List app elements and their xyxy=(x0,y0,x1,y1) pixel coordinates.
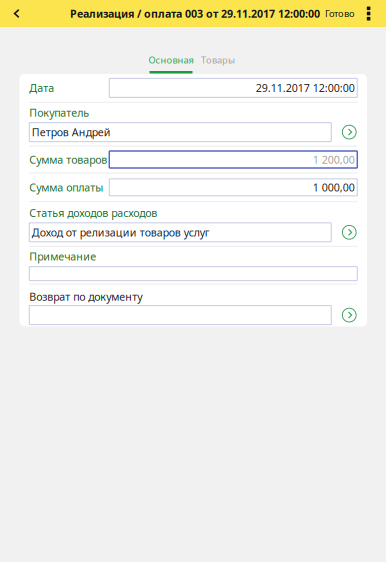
staticText: 1 200,00 xyxy=(313,152,355,167)
button[interactable]: Основная xyxy=(145,27,197,74)
staticText: Примечание xyxy=(29,249,96,263)
button[interactable]: More options xyxy=(359,0,379,27)
button[interactable]: Готово xyxy=(321,0,359,27)
button[interactable]: Back xyxy=(3,0,31,27)
button[interactable]: Select Покупатель xyxy=(341,124,357,140)
staticText: Возврат по документу xyxy=(29,289,142,304)
staticText: Готово xyxy=(325,7,355,20)
staticText: Статья доходов расходов xyxy=(29,206,157,220)
staticText: 1 000,00 xyxy=(313,180,355,194)
staticText: Товары xyxy=(201,54,235,66)
staticText: Сумма товаров xyxy=(29,152,107,167)
staticText: Сумма оплаты xyxy=(29,180,103,194)
staticText: Петров Андрей xyxy=(32,125,111,139)
staticText: Дата xyxy=(29,81,54,95)
staticText: Реализация / оплата 003 от 29.11.2017 12… xyxy=(70,6,320,21)
staticText: Основная xyxy=(148,54,193,66)
button[interactable]: Товары xyxy=(196,27,240,74)
staticText: Доход от релизации товаров услуг xyxy=(32,225,210,239)
button[interactable]: Select Возврат по документу xyxy=(341,307,357,323)
staticText: 29.11.2017 12:00:00 xyxy=(256,81,355,95)
staticText: Покупатель xyxy=(29,105,89,120)
button[interactable]: Select Статья доходов расходов xyxy=(341,224,357,240)
